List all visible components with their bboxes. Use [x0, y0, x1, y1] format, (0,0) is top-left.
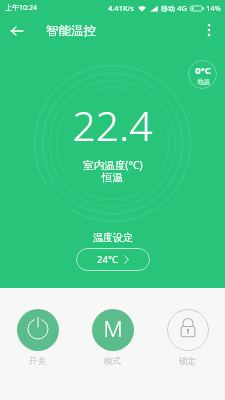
staticText: 22.4: [72, 97, 153, 153]
button[interactable]: 锁定: [167, 309, 209, 351]
staticText: 模式: [104, 356, 121, 367]
button[interactable]: 24°C: [76, 248, 150, 271]
button[interactable]: 模式: [92, 309, 134, 351]
button[interactable]: 开关: [17, 309, 59, 351]
staticText: M: [103, 313, 123, 343]
staticText: 锁定: [179, 356, 196, 367]
staticText: 地温: [197, 78, 210, 86]
staticText: 14%: [206, 3, 221, 13]
staticText: 4G: [177, 3, 187, 13]
button[interactable]: More options: [194, 16, 224, 46]
staticText: 开关: [29, 356, 46, 367]
staticText: 恒温: [102, 171, 123, 184]
staticText: 上午10:24: [5, 3, 37, 13]
staticText: 智能温控: [46, 23, 96, 39]
staticText: 室内温度(°C): [83, 158, 143, 172]
staticText: 温度设定: [93, 231, 133, 244]
button[interactable]: Back: [2, 16, 32, 46]
staticText: 0°C: [195, 64, 211, 77]
staticText: 4.41K/s: [108, 3, 134, 13]
button[interactable]: 0°C: [188, 60, 217, 89]
staticText: 24°C: [97, 253, 118, 266]
staticText: 移动: [161, 4, 175, 13]
